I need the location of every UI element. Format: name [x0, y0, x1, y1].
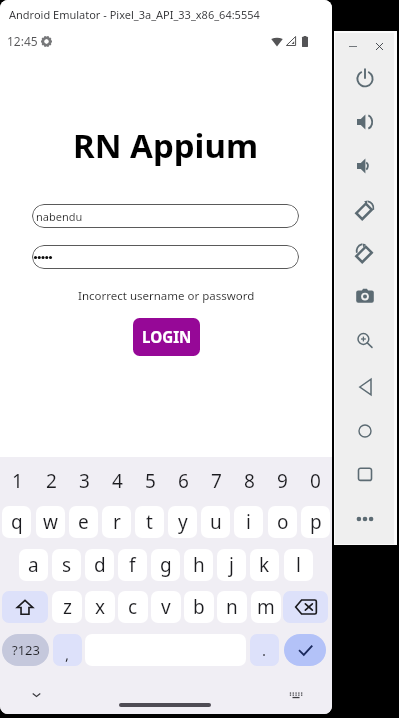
- button[interactable]: 9: [266, 466, 299, 496]
- button[interactable]: a: [19, 549, 48, 581]
- button[interactable]: f: [118, 549, 147, 581]
- button[interactable]: s: [52, 549, 81, 581]
- staticText: nabendu: [36, 209, 83, 224]
- button[interactable]: 0: [299, 466, 332, 496]
- button[interactable]: n: [217, 591, 247, 623]
- button[interactable]: Change keyboard: [286, 685, 306, 705]
- staticText: 0: [310, 468, 321, 494]
- staticText: s: [62, 552, 72, 578]
- button[interactable]: 1: [0, 466, 34, 496]
- staticText: u: [210, 509, 222, 535]
- button[interactable]: ,: [53, 634, 82, 666]
- staticText: j: [229, 552, 234, 578]
- button[interactable]: u: [201, 506, 230, 538]
- button[interactable]: c: [118, 591, 148, 623]
- staticText: r: [113, 509, 121, 535]
- staticText: h: [193, 552, 205, 578]
- button[interactable]: z: [52, 591, 82, 623]
- staticText: 4: [112, 468, 123, 494]
- staticText: k: [259, 552, 270, 578]
- button[interactable]: 8: [233, 466, 266, 496]
- staticText: ,: [65, 644, 70, 664]
- button[interactable]: v: [151, 591, 181, 623]
- button[interactable]: w: [36, 506, 65, 538]
- button[interactable]: Close: [367, 34, 391, 58]
- staticText: e: [78, 509, 89, 535]
- button[interactable]: nabendu: [32, 204, 299, 228]
- staticText: l: [296, 552, 301, 578]
- button[interactable]: Enter: [284, 634, 326, 666]
- button[interactable]: 2: [34, 466, 68, 496]
- staticText: w: [43, 509, 58, 535]
- button[interactable]: Hide keyboard: [26, 685, 46, 705]
- button[interactable]: Overview: [349, 458, 381, 490]
- button[interactable]: LOGIN: [133, 318, 200, 356]
- button[interactable]: Take screenshot: [349, 280, 381, 312]
- staticText: 7: [211, 468, 222, 494]
- button[interactable]: 4: [101, 466, 134, 496]
- staticText: v: [161, 594, 171, 620]
- button[interactable]: e: [69, 506, 98, 538]
- button[interactable]: Shift: [2, 591, 48, 623]
- staticText: Incorrect username or password: [78, 288, 255, 304]
- button[interactable]: [32, 245, 299, 269]
- button[interactable]: l: [284, 549, 313, 581]
- staticText: d: [94, 552, 106, 578]
- button[interactable]: q: [2, 506, 31, 538]
- button[interactable]: Rotate right: [349, 237, 381, 269]
- button[interactable]: Minimize: [341, 34, 365, 58]
- button[interactable]: ?123: [2, 634, 49, 666]
- button[interactable]: b: [184, 591, 214, 623]
- button[interactable]: Power: [349, 62, 381, 94]
- button[interactable]: p: [301, 506, 330, 538]
- button[interactable]: m: [251, 591, 281, 623]
- button[interactable]: d: [85, 549, 114, 581]
- button[interactable]: Rotate left: [349, 194, 381, 226]
- button[interactable]: 6: [167, 466, 200, 496]
- staticText: 6: [178, 468, 189, 494]
- staticText: a: [28, 552, 39, 578]
- staticText: p: [310, 509, 322, 535]
- button[interactable]: .: [250, 634, 279, 666]
- button[interactable]: o: [268, 506, 297, 538]
- button[interactable]: Home: [349, 415, 381, 447]
- button[interactable]: Volume up: [349, 106, 381, 138]
- staticText: 1: [12, 468, 23, 494]
- staticText: .: [262, 640, 267, 660]
- button[interactable]: Volume down: [349, 150, 381, 182]
- staticText: f: [129, 552, 136, 578]
- button[interactable]: j: [217, 549, 246, 581]
- button[interactable]: 3: [68, 466, 101, 496]
- button[interactable]: g: [151, 549, 180, 581]
- button[interactable]: r: [102, 506, 131, 538]
- staticText: RN Appium: [73, 123, 259, 168]
- staticText: 9: [277, 468, 288, 494]
- staticText: c: [128, 594, 138, 620]
- staticText: n: [226, 594, 238, 620]
- button[interactable]: Zoom: [349, 325, 381, 357]
- button[interactable]: i: [234, 506, 263, 538]
- staticText: g: [160, 552, 172, 578]
- button[interactable]: y: [168, 506, 197, 538]
- button[interactable]: h: [184, 549, 213, 581]
- button[interactable]: k: [250, 549, 279, 581]
- staticText: 8: [244, 468, 255, 494]
- button[interactable]: Backspace: [283, 591, 328, 623]
- staticText: b: [193, 594, 205, 620]
- staticText: 12:45: [7, 33, 38, 49]
- button[interactable]: t: [135, 506, 164, 538]
- button[interactable]: 5: [134, 466, 167, 496]
- staticText: t: [146, 509, 153, 535]
- button[interactable]: x: [85, 591, 115, 623]
- staticText: 5: [145, 468, 156, 494]
- staticText: ?123: [12, 641, 40, 659]
- button[interactable]: Back: [349, 371, 381, 403]
- staticText: y: [178, 509, 188, 535]
- button[interactable]: More: [349, 503, 381, 535]
- staticText: 2: [46, 468, 57, 494]
- staticText: i: [246, 509, 251, 535]
- staticText: q: [11, 509, 23, 535]
- staticText: Android Emulator - Pixel_3a_API_33_x86_6…: [9, 7, 260, 22]
- button[interactable]: 7: [200, 466, 233, 496]
